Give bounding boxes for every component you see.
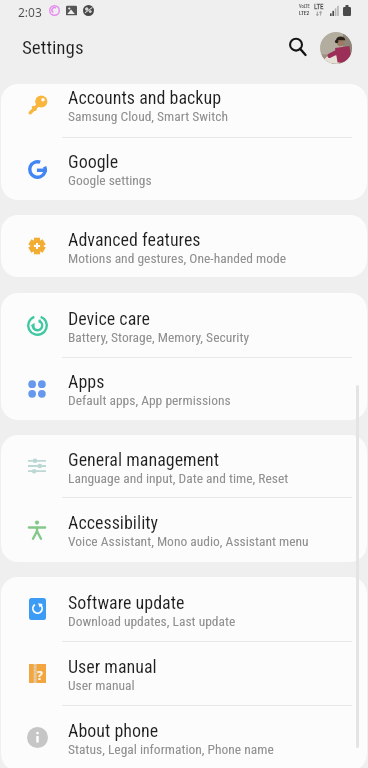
staticText: Samsung Cloud, Smart Switch: [68, 108, 228, 124]
staticText: ?: [37, 667, 43, 683]
staticText: Device care: [68, 308, 151, 329]
staticText: Accessibility: [68, 512, 159, 533]
staticText: Google settings: [68, 172, 152, 188]
button[interactable]: Advanced features: [1, 215, 367, 277]
staticText: Language and input, Date and time, Reset: [68, 470, 289, 486]
staticText: Download updates, Last update: [68, 613, 236, 629]
staticText: VoLTE: [299, 4, 310, 9]
staticText: Google: [68, 151, 119, 172]
staticText: Voice Assistant, Mono audio, Assistant m…: [68, 533, 309, 549]
staticText: General management: [68, 449, 220, 470]
button[interactable]: Profile: [320, 32, 352, 64]
button[interactable]: Software update: [1, 577, 367, 641]
button[interactable]: Accessibility: [1, 497, 367, 562]
staticText: Status, Legal information, Phone name: [68, 741, 274, 757]
staticText: LTE2: [299, 10, 310, 16]
staticText: Software update: [68, 592, 185, 613]
button[interactable]: Accounts and backup: [1, 84, 367, 137]
button[interactable]: About phone: [1, 705, 367, 768]
staticText: Default apps, App permissions: [68, 392, 231, 408]
staticText: Apps: [68, 371, 105, 392]
staticText: User manual: [68, 677, 135, 693]
staticText: User manual: [68, 656, 157, 677]
button[interactable]: ?: [1, 641, 367, 705]
staticText: Settings: [22, 36, 84, 58]
button[interactable]: Apps: [1, 357, 367, 420]
staticText: LTE: [314, 3, 324, 11]
button[interactable]: Google: [1, 137, 367, 200]
staticText: Motions and gestures, One-handed mode: [68, 250, 286, 266]
button[interactable]: Search: [282, 31, 314, 63]
button[interactable]: General management: [1, 435, 367, 497]
staticText: Battery, Storage, Memory, Security: [68, 329, 250, 345]
staticText: 2:03: [18, 4, 42, 20]
staticText: Accounts and backup: [68, 87, 222, 108]
button[interactable]: Device care: [1, 293, 367, 357]
staticText: About phone: [68, 720, 159, 741]
staticText: Advanced features: [68, 229, 201, 250]
